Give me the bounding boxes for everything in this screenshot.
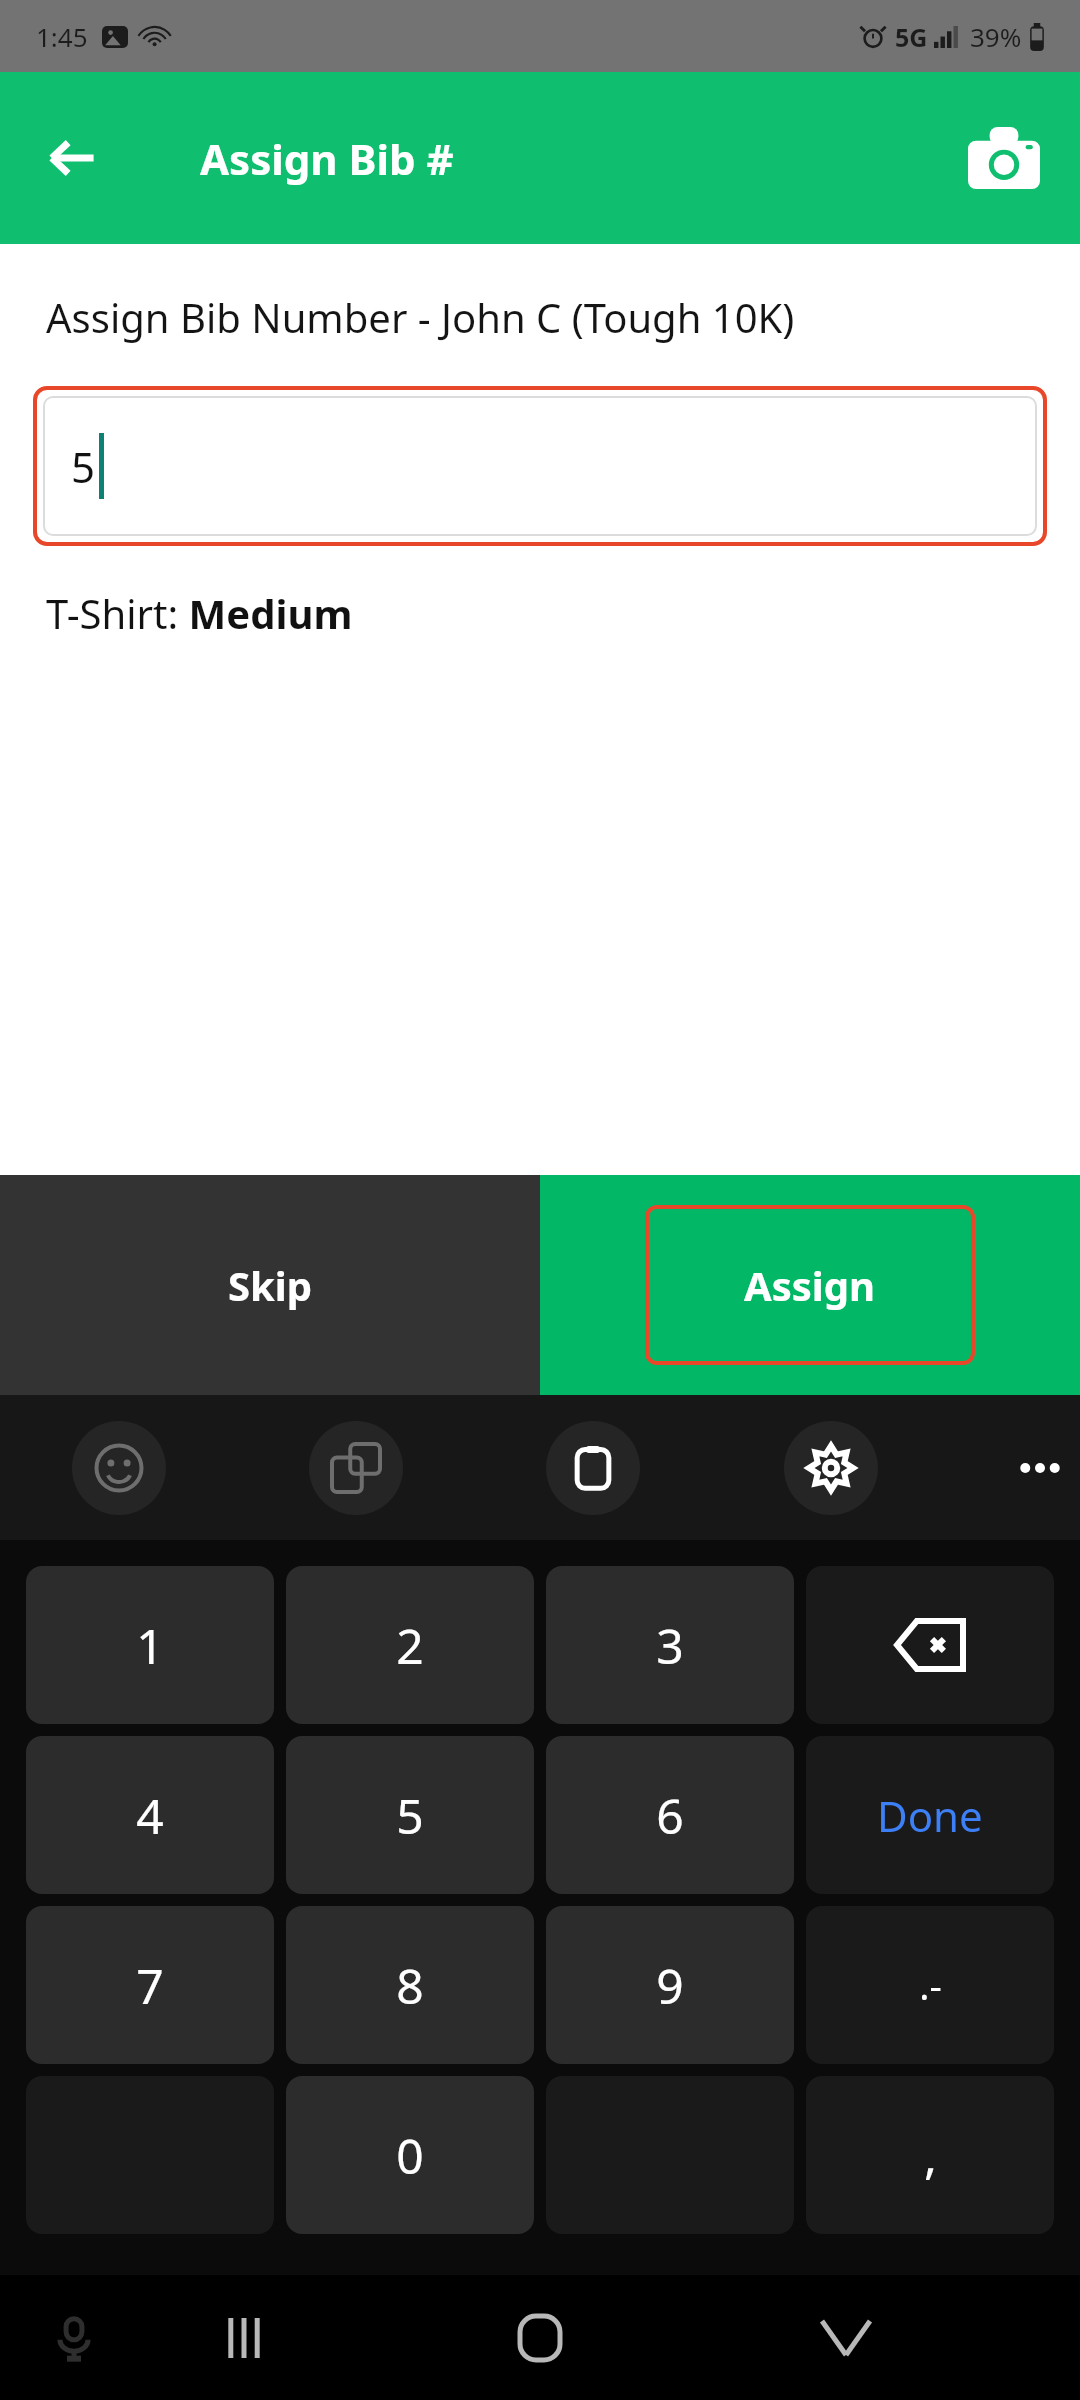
staticText: 1 xyxy=(136,1613,164,1678)
staticText: Done xyxy=(877,1787,983,1844)
staticText: 2 xyxy=(396,1613,424,1678)
button[interactable]: Camera xyxy=(956,110,1052,206)
staticText: 3 xyxy=(656,1613,684,1678)
button[interactable]: Emoji xyxy=(72,1421,166,1515)
button[interactable]: Settings xyxy=(784,1421,878,1515)
button[interactable]: Voice input xyxy=(34,2298,114,2378)
button[interactable]: Done xyxy=(806,1736,1054,1894)
staticText: 39% xyxy=(970,19,1022,54)
staticText: .- xyxy=(919,1959,942,2011)
button[interactable]: .- xyxy=(806,1906,1054,2064)
button[interactable]: Home xyxy=(494,2292,586,2384)
staticText: 5 xyxy=(396,1783,424,1848)
staticText: 5 xyxy=(71,438,96,495)
staticText: Assign Bib Number - John C (Tough 10K) xyxy=(46,290,795,344)
button[interactable]: Assign xyxy=(540,1175,1080,1395)
button[interactable]: 9 xyxy=(546,1906,794,2064)
staticText: Assign xyxy=(744,1258,876,1312)
button[interactable]: Translate xyxy=(309,1421,403,1515)
staticText: 5G xyxy=(895,20,928,54)
staticText: 1:45 xyxy=(36,19,88,54)
button[interactable]: 6 xyxy=(546,1736,794,1894)
button[interactable]: Backspace xyxy=(806,1566,1054,1724)
staticText: T-Shirt: Medium xyxy=(46,586,353,640)
staticText: 8 xyxy=(396,1953,424,2018)
button[interactable]: 7 xyxy=(26,1906,274,2064)
button[interactable]: 0 xyxy=(286,2076,534,2234)
button[interactable]: 5 xyxy=(286,1736,534,1894)
button[interactable]: Recent apps xyxy=(198,2292,290,2384)
button[interactable]: 2 xyxy=(286,1566,534,1724)
staticText: Skip xyxy=(228,1258,313,1312)
button[interactable]: Clipboard xyxy=(546,1421,640,1515)
staticText: 6 xyxy=(656,1783,684,1848)
staticText: 9 xyxy=(656,1953,684,2018)
staticText: , xyxy=(924,2123,937,2188)
button[interactable]: More options xyxy=(1000,1428,1080,1508)
staticText: 0 xyxy=(396,2123,424,2188)
button[interactable]: Skip xyxy=(0,1175,540,1395)
staticText: 4 xyxy=(136,1783,164,1848)
button[interactable]: Hide keyboard xyxy=(800,2292,892,2384)
button[interactable]: Back xyxy=(28,114,116,202)
button[interactable]: 5 xyxy=(33,386,1047,546)
button[interactable]: , xyxy=(806,2076,1054,2234)
button[interactable]: 1 xyxy=(26,1566,274,1724)
button[interactable]: 3 xyxy=(546,1566,794,1724)
staticText: Assign Bib # xyxy=(200,130,454,187)
button[interactable]: 4 xyxy=(26,1736,274,1894)
staticText: 7 xyxy=(136,1953,164,2018)
button[interactable]: 8 xyxy=(286,1906,534,2064)
